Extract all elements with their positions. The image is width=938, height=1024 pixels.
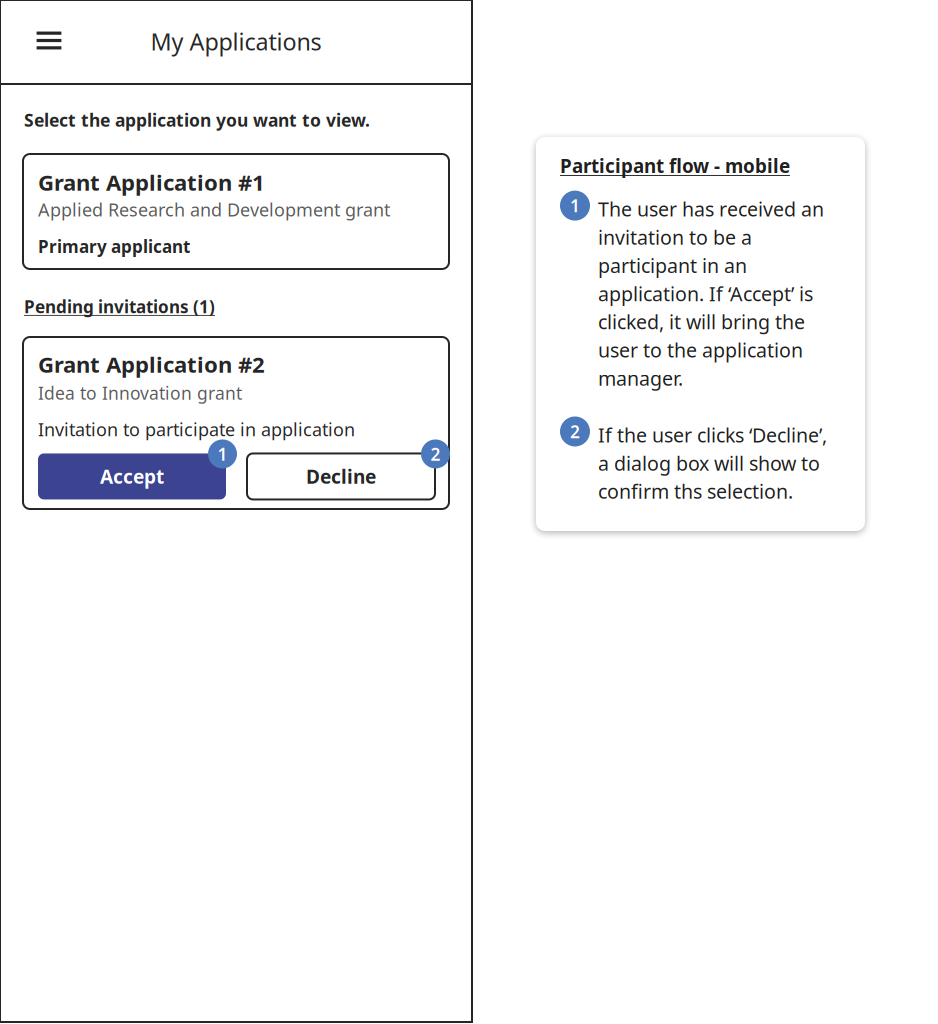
staticText: Select the application you want to view. (24, 108, 370, 132)
button[interactable]: Menu (0, 1, 79, 81)
staticText: Idea to Innovation grant (38, 381, 242, 405)
staticText: Decline (306, 463, 376, 489)
staticText: Participant flow - mobile (560, 153, 790, 179)
staticText: Primary applicant (38, 235, 190, 258)
button[interactable]: Grant Application #1 (23, 154, 449, 269)
staticText: If the user clicks ‘Decline’, a dialog b… (598, 421, 827, 505)
staticText: Pending invitations (1) (24, 295, 215, 318)
staticText: Grant Application #2 (38, 349, 265, 379)
staticText: Invitation to participate in application (38, 417, 355, 441)
button[interactable]: Decline (247, 453, 435, 499)
staticText: 1 (217, 442, 227, 466)
staticText: Grant Application #1 (38, 167, 265, 197)
staticText: 2 (570, 420, 580, 443)
staticText: 2 (430, 442, 440, 466)
staticText: The user has received an invitation to b… (598, 196, 824, 391)
staticText: 1 (570, 194, 580, 217)
staticText: Applied Research and Development grant (38, 197, 390, 222)
staticText: My Applications (150, 26, 321, 57)
button[interactable]: Accept (38, 453, 226, 499)
staticText: Accept (100, 463, 164, 489)
